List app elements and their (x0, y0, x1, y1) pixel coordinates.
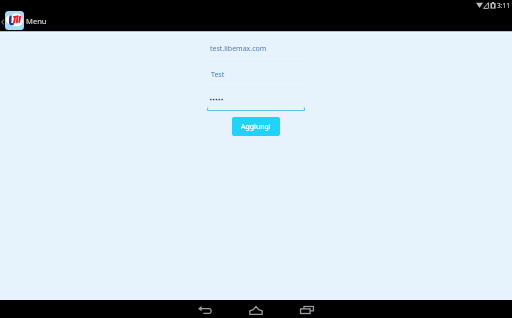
button[interactable]: Back (188, 300, 222, 318)
staticText: Test (211, 70, 225, 80)
button[interactable]: App icon (5, 11, 24, 30)
button[interactable]: Recent apps (290, 300, 324, 318)
staticText: Menu (26, 16, 47, 26)
staticText: Aggiungi (241, 122, 271, 132)
staticText: 3:11 (497, 1, 510, 10)
button[interactable]: Aggiungi (232, 117, 280, 136)
other: Back (1, 19, 4, 25)
button[interactable]: Home (239, 300, 273, 318)
staticText: test.libemax.com (210, 44, 267, 54)
